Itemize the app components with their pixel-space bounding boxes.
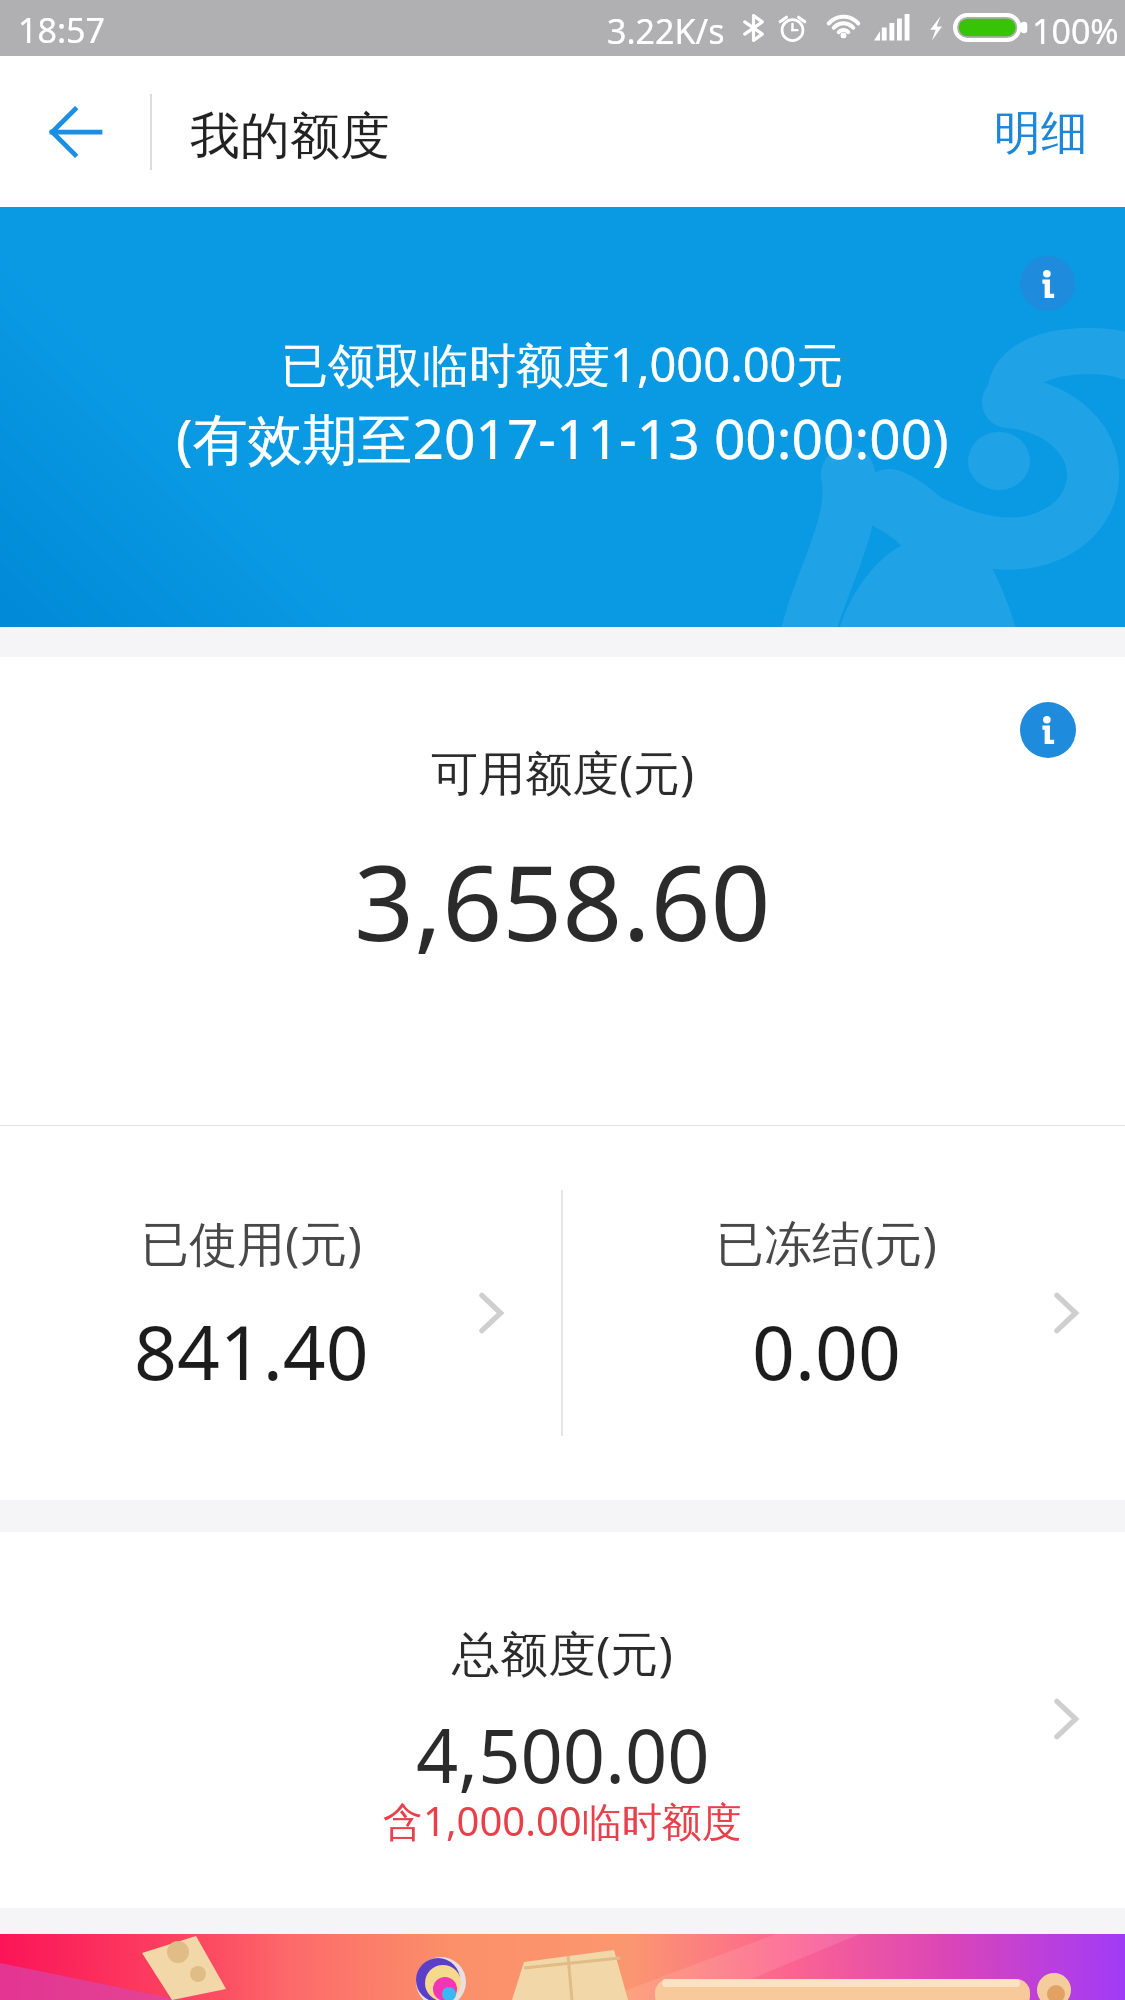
staticText: 总额度(元): [452, 1620, 673, 1686]
button[interactable]: 已使用(元): [0, 1126, 562, 1500]
button[interactable]: 总额度(元): [0, 1532, 1125, 1908]
staticText: 841.40: [134, 1300, 369, 1402]
staticText: 可用额度(元): [431, 740, 695, 804]
button[interactable]: Info: [1020, 702, 1076, 758]
button[interactable]: Promotion banner: [0, 1934, 1125, 2000]
staticText: 我的额度: [190, 105, 390, 168]
staticText: (有效期至2017-11-13 00:00:00): [176, 400, 949, 475]
staticText: 含1,000.00临时额度: [383, 1793, 742, 1848]
staticText: 3.22K/s: [607, 8, 725, 54]
staticText: 0.00: [752, 1300, 901, 1402]
staticText: 明细: [994, 104, 1088, 163]
staticText: 已领取临时额度1,000.00元: [281, 332, 844, 396]
button[interactable]: 明细: [955, 56, 1125, 207]
button[interactable]: 已冻结(元): [562, 1126, 1125, 1500]
button[interactable]: Back: [13, 56, 138, 207]
staticText: 3,658.60: [354, 829, 771, 972]
staticText: 4,500.00: [416, 1704, 710, 1805]
button[interactable]: Info: [1020, 256, 1075, 311]
staticText: 18:57: [18, 7, 105, 53]
staticText: 100%: [1032, 8, 1119, 54]
staticText: 已使用(元): [141, 1210, 362, 1276]
staticText: 已冻结(元): [716, 1210, 937, 1276]
